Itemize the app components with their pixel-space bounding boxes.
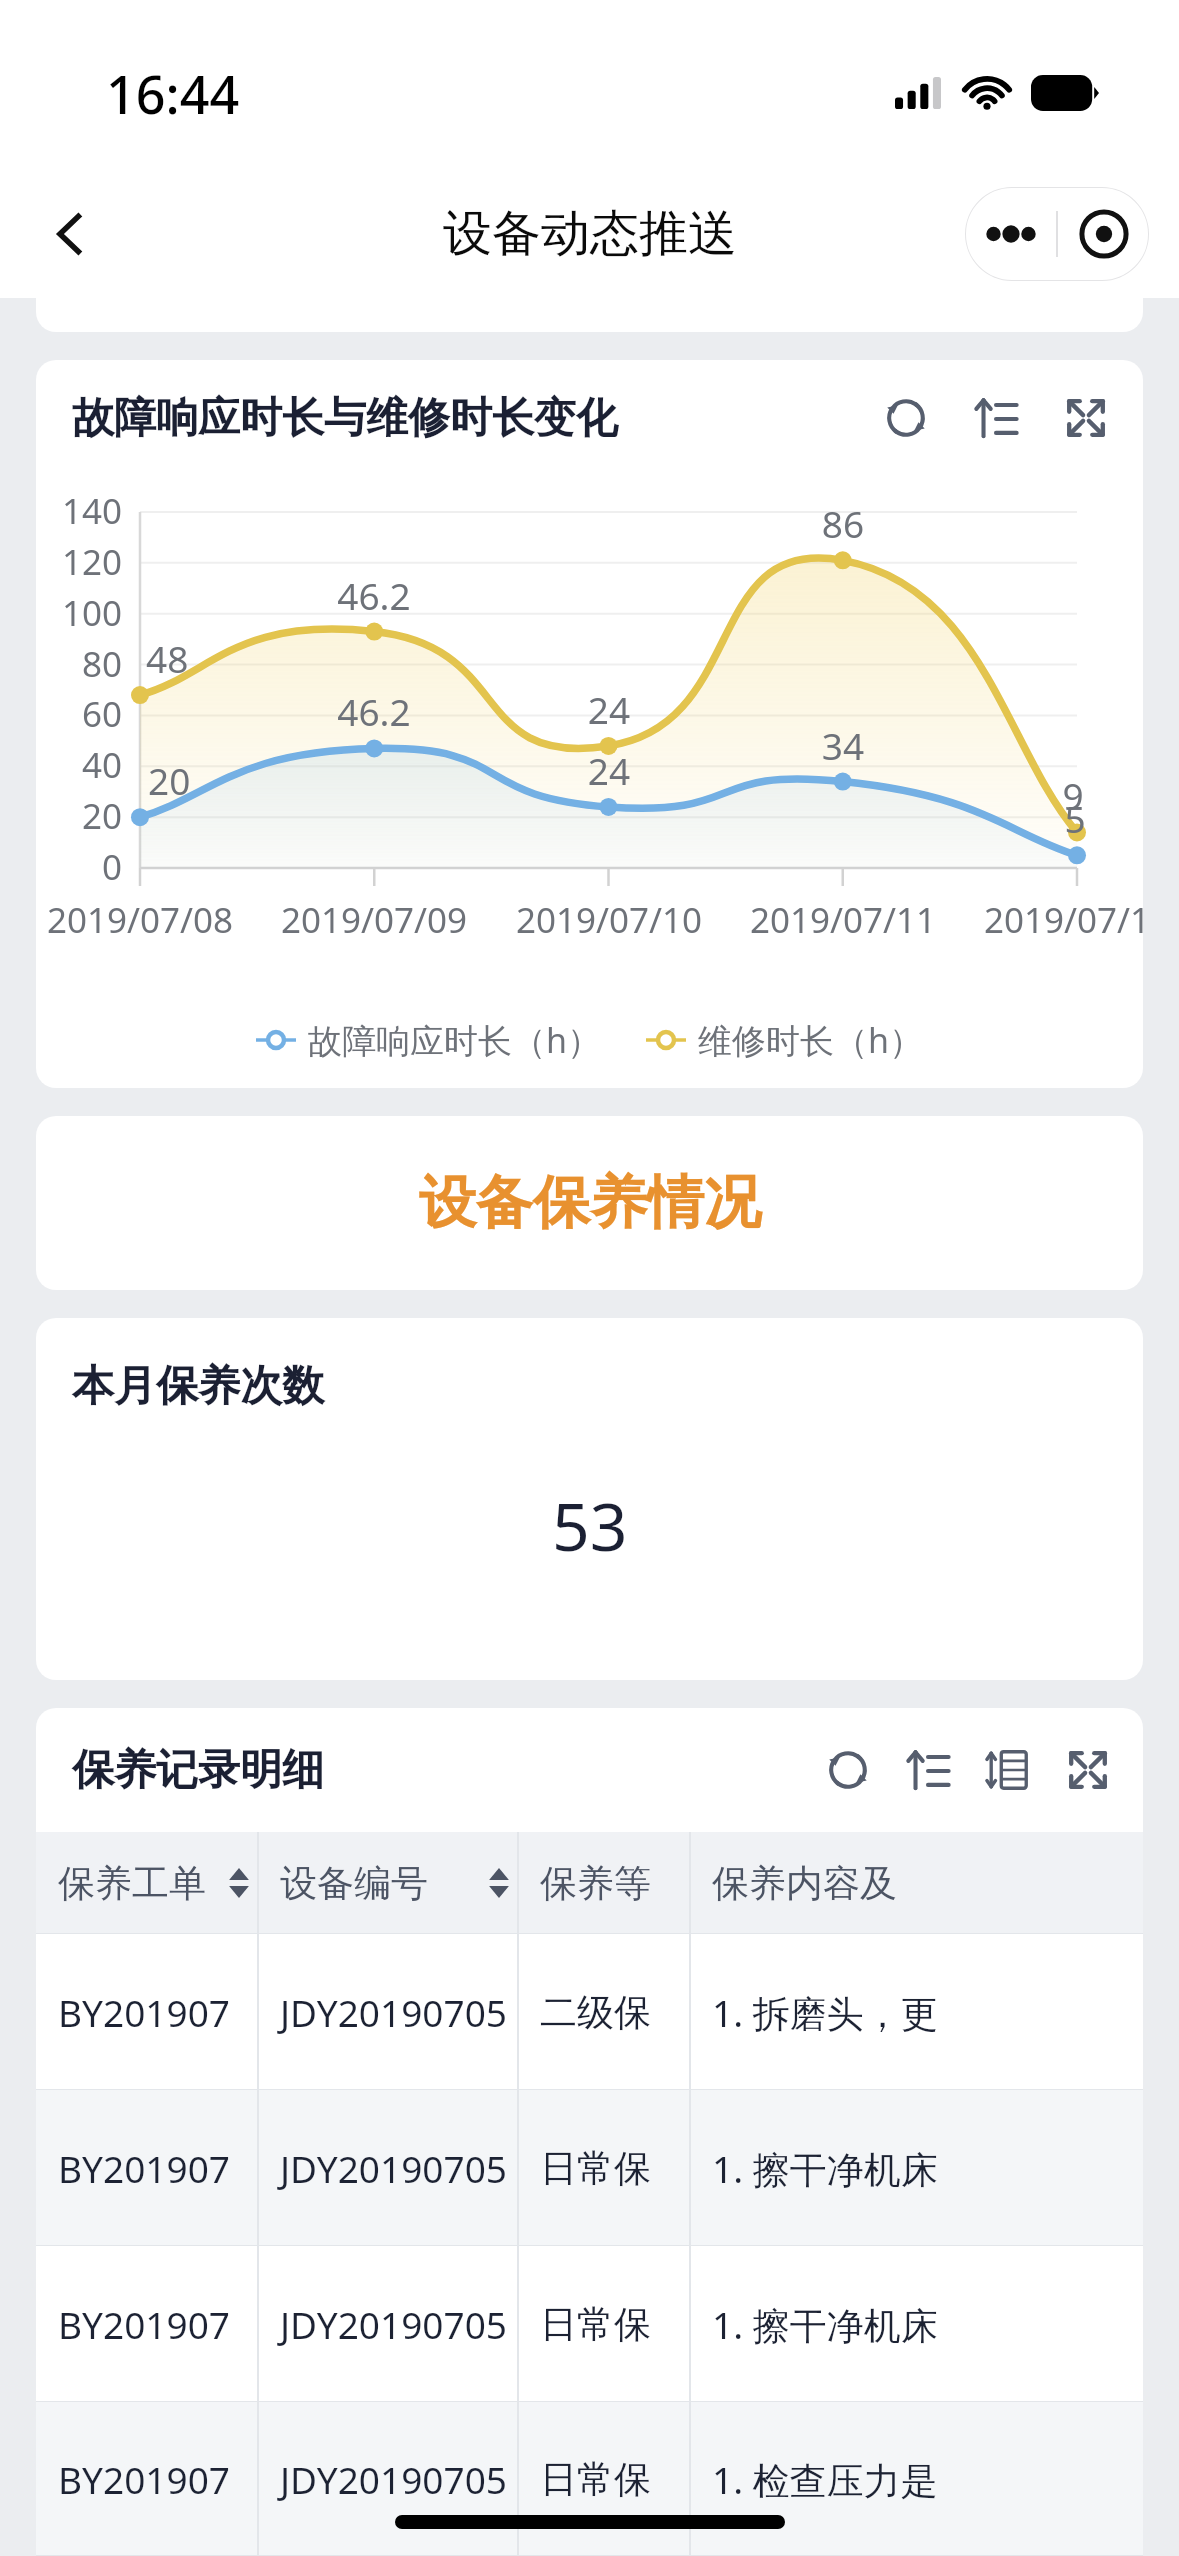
- staticText: 保养工单: [58, 1860, 206, 1907]
- button[interactable]: BY201907024: [36, 2090, 1143, 2246]
- button[interactable]: Fullscreen: [1059, 1741, 1117, 1799]
- staticText: 5: [1005, 793, 1143, 843]
- staticText: 保养内容及: [712, 1860, 897, 1907]
- staticText: 9: [1003, 770, 1143, 820]
- staticText: JDY20190705-002: [280, 2143, 510, 2193]
- staticText: 保养记录明细: [72, 1744, 324, 1797]
- staticText: BY201907024: [58, 2143, 250, 2193]
- staticText: BY201907022: [58, 2454, 250, 2504]
- button[interactable]: Back: [32, 196, 108, 272]
- staticText: 86: [773, 498, 913, 548]
- button[interactable]: 维修时长（h）: [646, 1017, 924, 1063]
- staticText: 设备保养情况: [419, 1167, 761, 1239]
- staticText: 日常保养: [540, 2301, 682, 2348]
- staticText: 46.2: [304, 570, 444, 620]
- staticText: JDY20190705-001: [280, 1987, 510, 2037]
- button[interactable]: More: [965, 187, 1056, 281]
- staticText: 120: [36, 538, 122, 586]
- staticText: 24: [539, 745, 679, 795]
- staticText: 维修时长（h）: [698, 1017, 924, 1063]
- staticText: 100: [36, 589, 122, 637]
- staticText: JDY20190705-093: [280, 2454, 510, 2504]
- staticText: 设备编号: [280, 1860, 428, 1907]
- staticText: 本月保养次数: [72, 1360, 324, 1413]
- button[interactable]: BY201907022: [36, 2402, 1143, 2556]
- staticText: 日常保养: [540, 2456, 682, 2503]
- staticText: 二级保养: [540, 1989, 682, 2036]
- button[interactable]: Close mini program: [1058, 187, 1149, 281]
- staticText: 60: [36, 690, 122, 738]
- staticText: 故障响应时长（h）: [308, 1017, 602, 1063]
- staticText: 2019/07/10: [491, 896, 727, 944]
- staticText: 2019/07/11: [725, 896, 961, 944]
- staticText: 故障响应时长与维修时长变化: [72, 392, 618, 445]
- staticText: 16:44: [106, 58, 240, 129]
- staticText: 140: [36, 487, 122, 535]
- staticText: 24: [539, 684, 679, 734]
- button[interactable]: Fullscreen: [1057, 389, 1115, 447]
- staticText: 2019/07/08: [36, 896, 258, 944]
- staticText: 1. 擦干净机床: [712, 2143, 938, 2194]
- button[interactable]: 故障响应时长（h）: [256, 1017, 602, 1063]
- staticText: 1. 擦干净机床: [712, 2299, 938, 2350]
- button[interactable]: Row height: [979, 1741, 1037, 1799]
- staticText: 2019/07/09: [256, 896, 492, 944]
- button[interactable]: BY201907025: [36, 1934, 1143, 2090]
- staticText: 20: [148, 755, 288, 805]
- staticText: 1. 拆磨头，更: [712, 1987, 938, 2038]
- button[interactable]: Refresh: [877, 389, 935, 447]
- staticText: 80: [36, 640, 122, 688]
- staticText: 1. 检查压力是: [712, 2454, 938, 2505]
- staticText: 48: [146, 633, 286, 683]
- button[interactable]: Sort: [899, 1741, 957, 1799]
- staticText: 34: [773, 720, 913, 770]
- staticText: 53: [552, 1480, 628, 1570]
- staticText: 40: [36, 741, 122, 789]
- staticText: 2019/07/12: [959, 896, 1143, 944]
- button[interactable]: Sort: [967, 389, 1025, 447]
- staticText: 日常保养: [540, 2145, 682, 2192]
- staticText: 保养等级: [540, 1860, 682, 1907]
- button[interactable]: BY201907023: [36, 2246, 1143, 2402]
- button[interactable]: 设备保养情况: [36, 1116, 1143, 1290]
- staticText: BY201907023: [58, 2299, 250, 2349]
- button[interactable]: Refresh: [819, 1741, 877, 1799]
- button[interactable]: 保养工单: [36, 1832, 1143, 1934]
- staticText: 0: [36, 843, 122, 891]
- staticText: 20: [36, 792, 122, 840]
- staticText: JDY20190705-002: [280, 2299, 510, 2349]
- staticText: BY201907025: [58, 1987, 250, 2037]
- staticText: 46.2: [304, 686, 444, 736]
- staticText: 设备动态推送: [443, 203, 737, 265]
